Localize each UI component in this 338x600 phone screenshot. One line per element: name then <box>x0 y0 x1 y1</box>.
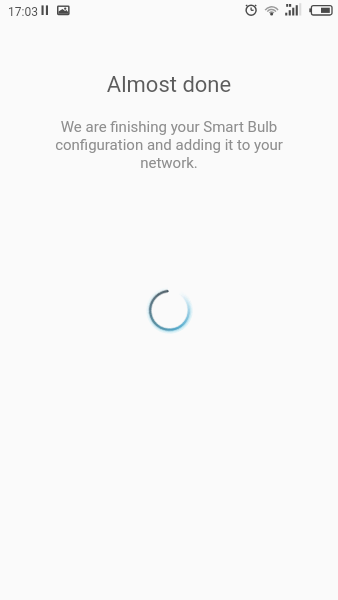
other: Loading <box>145 286 193 334</box>
staticText: 17:03 <box>8 5 38 19</box>
staticText: We are finishing your Smart Bulb configu… <box>30 118 308 172</box>
staticText: Almost done <box>0 72 338 98</box>
